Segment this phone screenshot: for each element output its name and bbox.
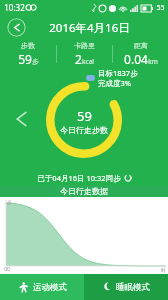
button[interactable]: 距离 xyxy=(113,41,168,67)
staticText: 距离 xyxy=(134,41,148,50)
button[interactable]: Back xyxy=(7,18,26,37)
staticText: 运动模式 xyxy=(33,282,67,293)
button[interactable]: 卡路里 xyxy=(57,41,112,67)
staticText: 已于04月16日 10:32同步 xyxy=(37,173,121,183)
staticText: 59 xyxy=(77,107,92,125)
button[interactable]: 睡眠模式 xyxy=(84,274,168,300)
staticText: 10:32 xyxy=(4,2,25,13)
staticText: 59 xyxy=(18,51,32,67)
button[interactable]: 运动模式 xyxy=(0,274,84,300)
staticText: 目标1837步 xyxy=(98,68,138,78)
button[interactable]: Previous day xyxy=(8,108,30,130)
staticText: 今日行走数据 xyxy=(60,186,108,196)
staticText: 55 xyxy=(156,3,165,13)
staticText: 卡路里 xyxy=(74,41,95,50)
staticText: 步 xyxy=(7,199,12,205)
staticText: kcal xyxy=(82,57,94,66)
button[interactable]: 已于04月16日 10:32同步 xyxy=(0,171,168,185)
staticText: 步数 xyxy=(21,41,35,50)
staticText: km xyxy=(148,57,158,66)
staticText: 2 xyxy=(75,51,82,67)
staticText: 睡眠模式 xyxy=(116,282,150,293)
staticText: 今日行走步数 xyxy=(60,125,108,135)
staticText: 00 xyxy=(4,266,10,273)
staticText: 步 xyxy=(32,58,39,66)
staticText: 2016年4月16日 xyxy=(49,20,130,36)
staticText: 完成度3% xyxy=(98,78,132,88)
staticText: 时 xyxy=(161,267,166,273)
button[interactable]: 步数 xyxy=(0,41,56,67)
staticText: 0.04 xyxy=(124,51,148,67)
